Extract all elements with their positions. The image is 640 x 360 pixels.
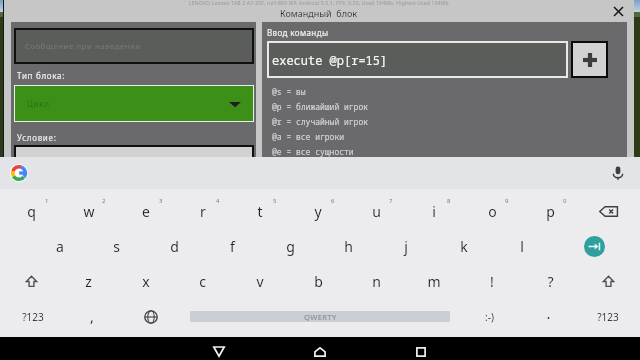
staticText: Условие: bbox=[17, 132, 57, 143]
staticText: Тип блока: bbox=[17, 70, 66, 81]
button[interactable]: ?123 bbox=[3, 299, 62, 334]
button[interactable]: ! bbox=[463, 264, 521, 299]
staticText: LENOVO Lenovo TAB 2 A7-20F, ruH-889 MP, … bbox=[189, 0, 449, 7]
staticText: e bbox=[142, 202, 150, 221]
staticText: p bbox=[546, 202, 555, 221]
staticText: g bbox=[286, 237, 295, 256]
button[interactable]: z bbox=[60, 264, 117, 299]
staticText: 9 bbox=[505, 197, 509, 205]
button[interactable]: x bbox=[117, 264, 174, 299]
button[interactable]: Shift bbox=[3, 264, 60, 299]
button[interactable]: Recent apps bbox=[391, 337, 451, 360]
staticText: y bbox=[314, 202, 322, 221]
button[interactable]: Add command bbox=[573, 43, 606, 76]
staticText: @p = ближайший игрок bbox=[272, 101, 368, 112]
button[interactable]: Сообщение при наведении bbox=[14, 28, 254, 64]
button[interactable]: a bbox=[31, 229, 88, 264]
button[interactable]: j bbox=[377, 229, 435, 264]
button[interactable]: · bbox=[519, 299, 578, 334]
button[interactable]: Back bbox=[189, 337, 249, 360]
staticText: f bbox=[230, 237, 235, 256]
button[interactable]: b bbox=[289, 264, 347, 299]
staticText: b bbox=[314, 272, 323, 291]
staticText: 8 bbox=[447, 197, 451, 205]
button[interactable]: ? bbox=[521, 264, 579, 299]
button[interactable]: t bbox=[231, 194, 289, 229]
staticText: QWERTY bbox=[304, 312, 337, 322]
staticText: h bbox=[344, 237, 353, 256]
button[interactable] bbox=[14, 145, 254, 165]
staticText: o bbox=[488, 202, 497, 221]
button[interactable]: QWERTY bbox=[190, 311, 450, 322]
button[interactable]: p bbox=[521, 194, 579, 229]
staticText: ! bbox=[490, 272, 494, 291]
button[interactable]: f bbox=[203, 229, 261, 264]
button[interactable]: Цикл bbox=[15, 86, 253, 121]
button[interactable]: q bbox=[3, 194, 60, 229]
staticText: w bbox=[83, 202, 95, 221]
staticText: 3 bbox=[159, 197, 163, 205]
staticText: q bbox=[27, 202, 36, 221]
button[interactable]: Home bbox=[290, 337, 350, 360]
button[interactable]: :-) bbox=[460, 299, 519, 334]
button[interactable]: d bbox=[145, 229, 203, 264]
staticText: 1 bbox=[45, 197, 49, 205]
button[interactable]: w bbox=[60, 194, 117, 229]
button[interactable]: Change keyboard language bbox=[121, 299, 180, 334]
button[interactable]: h bbox=[319, 229, 377, 264]
staticText: ?123 bbox=[22, 310, 44, 324]
button[interactable]: o bbox=[463, 194, 521, 229]
staticText: t bbox=[257, 202, 263, 221]
button[interactable]: Shift bbox=[579, 264, 637, 299]
staticText: Ввод команды bbox=[267, 27, 329, 38]
staticText: k bbox=[460, 237, 468, 256]
button[interactable]: Enter bbox=[551, 229, 637, 264]
button[interactable]: u bbox=[347, 194, 405, 229]
button[interactable]: ?123 bbox=[578, 299, 637, 334]
staticText: Сообщение при наведении bbox=[25, 41, 141, 51]
button[interactable]: e bbox=[117, 194, 174, 229]
button[interactable]: i bbox=[405, 194, 463, 229]
staticText: @e = все сущности bbox=[272, 146, 354, 157]
button[interactable]: k bbox=[435, 229, 493, 264]
staticText: m bbox=[427, 272, 441, 291]
staticText: u bbox=[372, 202, 381, 221]
button[interactable]: l bbox=[493, 229, 551, 264]
button[interactable]: g bbox=[261, 229, 319, 264]
button[interactable]: r bbox=[174, 194, 231, 229]
staticText: 0 bbox=[563, 197, 567, 205]
staticText: 4 bbox=[216, 197, 220, 205]
staticText: i bbox=[432, 202, 436, 221]
button[interactable]: s bbox=[88, 229, 145, 264]
staticText: , bbox=[90, 307, 94, 326]
staticText: :-) bbox=[485, 310, 494, 324]
staticText: c bbox=[199, 272, 206, 291]
button[interactable]: , bbox=[62, 299, 121, 334]
staticText: 2 bbox=[102, 197, 106, 205]
staticText: 7 bbox=[389, 197, 393, 205]
button[interactable]: y bbox=[289, 194, 347, 229]
staticText: r bbox=[200, 202, 206, 221]
staticText: x bbox=[142, 272, 150, 291]
button[interactable]: Close bbox=[610, 3, 626, 19]
staticText: n bbox=[372, 272, 381, 291]
staticText: d bbox=[170, 237, 179, 256]
button[interactable]: n bbox=[347, 264, 405, 299]
button[interactable]: v bbox=[231, 264, 289, 299]
staticText: execute @p[r=15] bbox=[272, 52, 388, 68]
button[interactable]: c bbox=[174, 264, 231, 299]
button[interactable]: Backspace bbox=[579, 194, 637, 229]
button[interactable]: Voice input bbox=[606, 161, 630, 185]
staticText: @a = все игроки bbox=[272, 131, 344, 142]
staticText: 6 bbox=[331, 197, 335, 205]
staticText: · bbox=[546, 307, 551, 327]
staticText: ?123 bbox=[597, 310, 619, 324]
button[interactable]: execute @p[r=15] bbox=[269, 43, 566, 76]
staticText: 5 bbox=[273, 197, 277, 205]
button[interactable]: m bbox=[405, 264, 463, 299]
staticText: @r = случайный игрок bbox=[272, 116, 368, 127]
staticText: ? bbox=[547, 272, 554, 291]
staticText: Командный блок bbox=[280, 7, 358, 19]
button[interactable]: Google search bbox=[6, 160, 32, 186]
staticText: Цикл bbox=[27, 98, 50, 109]
